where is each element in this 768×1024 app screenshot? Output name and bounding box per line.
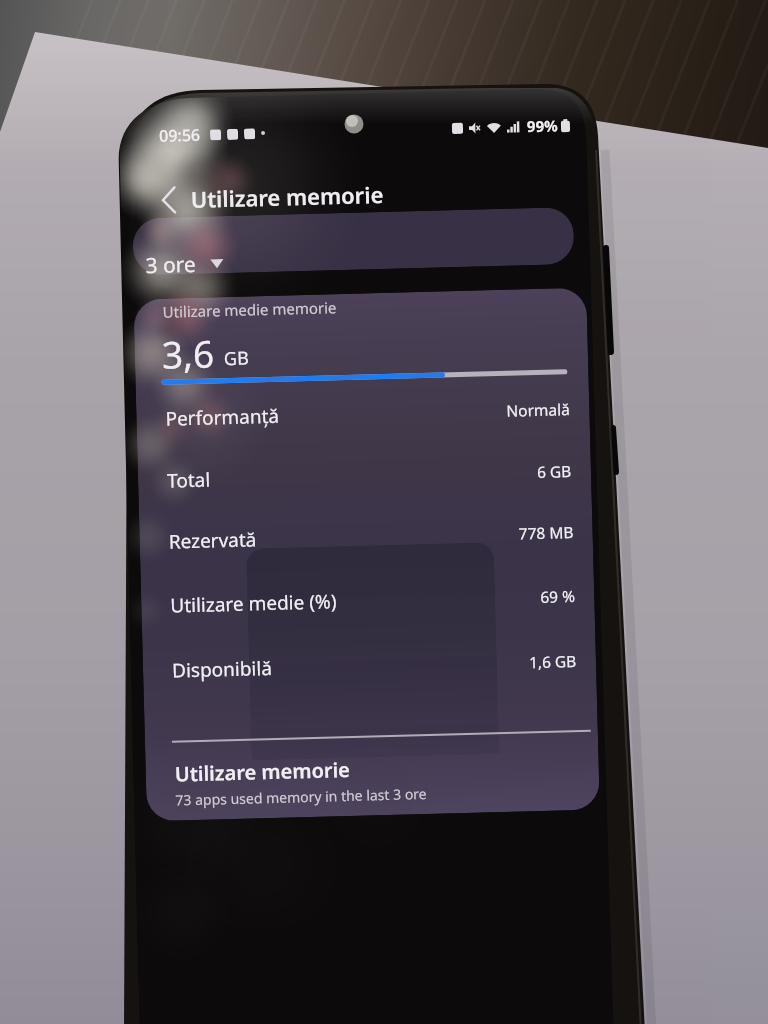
button[interactable]: Total	[137, 442, 592, 509]
staticText: 778 MB	[518, 521, 574, 543]
staticText: 69 %	[540, 585, 575, 607]
staticText: 6 GB	[537, 460, 572, 482]
staticText: 3 ore	[145, 250, 197, 280]
button[interactable]: Disponibilă	[142, 631, 597, 699]
staticText: Normală	[506, 398, 571, 421]
staticText: Utilizare memorie	[174, 756, 351, 788]
button[interactable]: Utilizare memorie	[145, 742, 600, 816]
staticText: 3,6	[161, 327, 215, 379]
button[interactable]: Rezervată	[139, 503, 593, 570]
staticText: Utilizare medie memorie	[162, 297, 337, 322]
staticText: 99%	[527, 115, 558, 136]
button[interactable]: Back	[147, 176, 188, 223]
button[interactable]: Performanță	[136, 380, 590, 447]
staticText: Total	[167, 466, 211, 494]
staticText: 1,6 GB	[529, 650, 577, 672]
staticText: 73 apps used memory in the last 3 ore	[175, 784, 428, 810]
staticText: Utilizare medie (%)	[170, 588, 338, 619]
staticText: Performanță	[165, 403, 280, 432]
staticText: Utilizare memorie	[190, 179, 384, 214]
button[interactable]: 3 ore	[145, 243, 224, 285]
button[interactable]: Utilizare medie (%)	[141, 566, 595, 634]
staticText: Disponibilă	[172, 655, 272, 684]
staticText: Rezervată	[168, 526, 257, 555]
staticText: 09:56	[159, 124, 200, 147]
staticText: GB	[224, 345, 249, 371]
